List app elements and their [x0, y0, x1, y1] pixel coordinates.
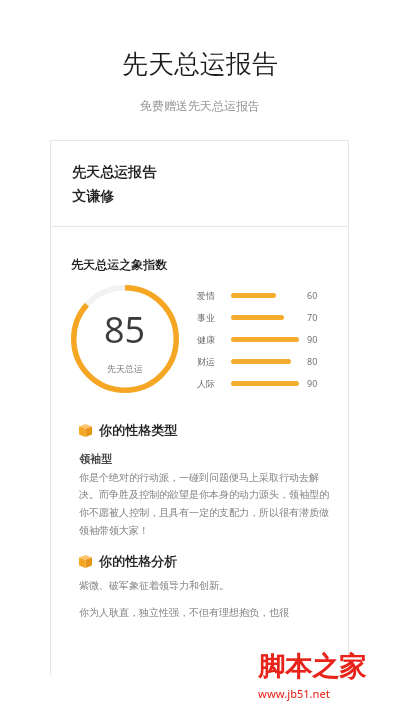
staticText: 你的性格类型 — [99, 422, 177, 438]
staticText: 领袖型 — [79, 452, 112, 466]
staticText: 你为人耿直，独立性强，不但有理想抱负，也很 — [79, 606, 289, 619]
staticText: 90 — [307, 377, 318, 389]
staticText: 文谦修 — [72, 188, 114, 206]
staticText: 你是个绝对的行动派，一碰到问题便马上采取行动去解决。而争胜及控制的欲望是你本身的… — [79, 471, 332, 537]
staticText: 财运 — [197, 356, 231, 367]
staticText: 80 — [307, 355, 318, 367]
staticText: 免费赠送先天总运报告 — [0, 98, 400, 113]
staticText: 脚本之家 — [258, 650, 366, 684]
staticText: 先天总运 — [107, 363, 143, 374]
staticText: 先天总运之象指数 — [71, 257, 167, 272]
staticText: 先天总运报告 — [0, 48, 400, 81]
staticText: 你的性格分析 — [99, 553, 177, 569]
staticText: 90 — [307, 333, 318, 345]
staticText: 先天总运报告 — [72, 164, 156, 182]
staticText: 60 — [307, 289, 318, 301]
staticText: 事业 — [197, 312, 231, 323]
button[interactable]: 先天总运报告 — [50, 140, 349, 675]
staticText: 70 — [307, 311, 318, 323]
staticText: 紫微、破军象征着领导力和创新。 — [79, 579, 229, 592]
staticText: 人际 — [197, 378, 231, 389]
staticText: 爱情 — [197, 290, 231, 301]
staticText: 85 — [104, 305, 146, 354]
staticText: 健康 — [197, 334, 231, 345]
staticText: www.jb51.net — [258, 686, 330, 701]
